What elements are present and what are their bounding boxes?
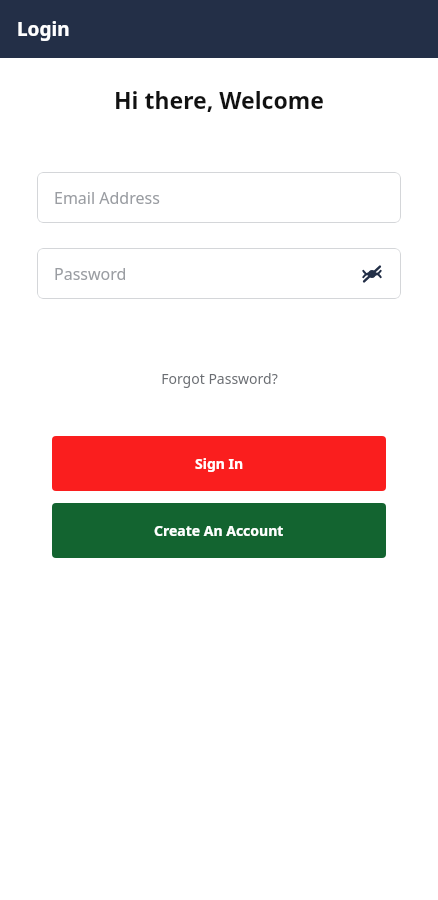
button[interactable]: Email Address	[37, 172, 401, 223]
staticText: Email Address	[54, 187, 160, 209]
staticText: Sign In	[195, 454, 244, 473]
button[interactable]: Password	[37, 248, 401, 299]
staticText: Hi there, Welcome	[0, 84, 438, 115]
staticText: Login	[17, 16, 70, 42]
button[interactable]: Sign In	[52, 436, 386, 491]
button[interactable]: Forgot Password?	[153, 365, 286, 392]
staticText: Password	[54, 263, 127, 285]
button[interactable]: Create An Account	[52, 503, 386, 558]
button[interactable]: Show password	[355, 257, 389, 291]
staticText: Create An Account	[154, 521, 284, 540]
